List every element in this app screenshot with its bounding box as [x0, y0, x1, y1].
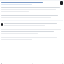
button[interactable]: Profile image: [0, 1, 64, 6]
button[interactable]: [1, 22, 63, 27]
button[interactable]: Profile image: [60, 1, 63, 5]
button[interactable]: [1, 28, 63, 35]
button[interactable]: [1, 36, 63, 41]
button[interactable]: [1, 6, 63, 13]
button[interactable]: [1, 14, 63, 19]
